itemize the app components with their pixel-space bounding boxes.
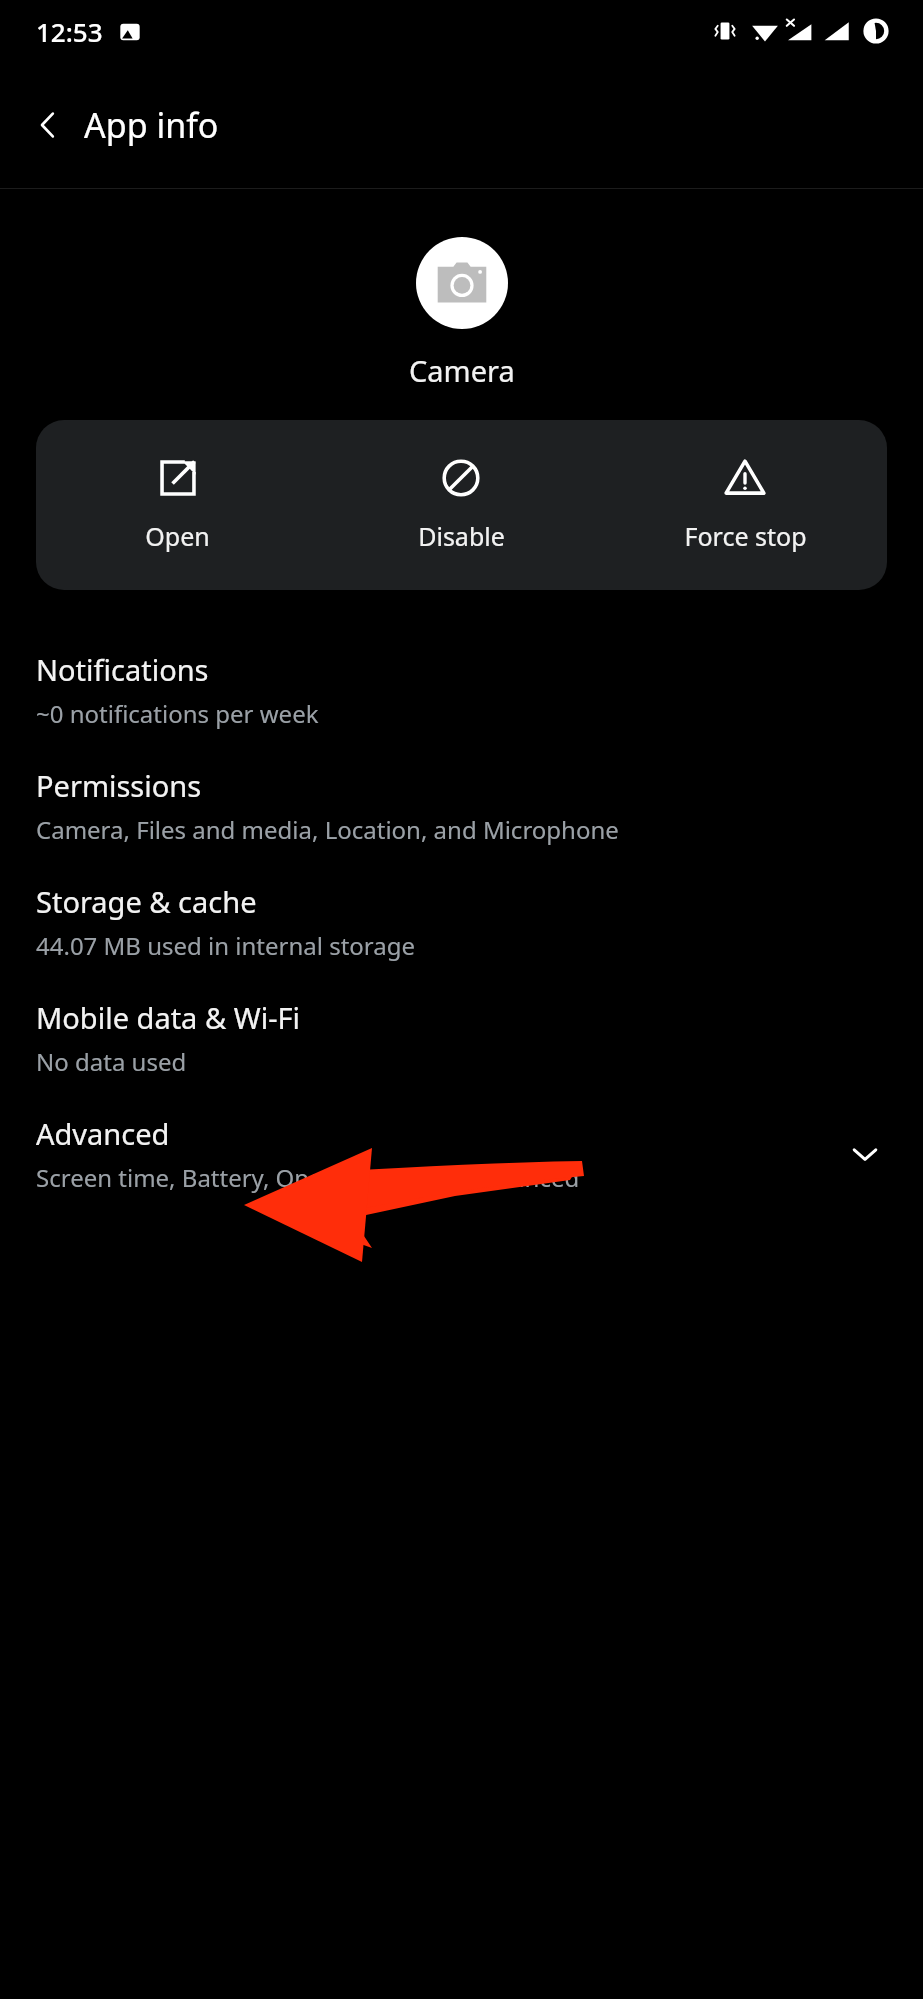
staticText: Force stop xyxy=(684,519,807,553)
staticText: Notifications xyxy=(36,650,209,689)
staticText: Open xyxy=(145,519,210,553)
button[interactable]: Disable xyxy=(319,420,603,590)
button[interactable]: Advanced xyxy=(0,1096,923,1212)
staticText: App info xyxy=(84,102,219,148)
button[interactable]: Permissions xyxy=(0,748,923,864)
staticText: Disable xyxy=(418,519,505,553)
staticText: Mobile data & Wi-Fi xyxy=(36,998,301,1037)
staticText: Screen time, Battery, Open by default, A… xyxy=(36,1161,580,1194)
button[interactable]: Notifications xyxy=(0,632,923,748)
staticText: Permissions xyxy=(36,766,202,805)
button[interactable]: Mobile data & Wi-Fi xyxy=(0,980,923,1096)
button[interactable]: Force stop xyxy=(603,420,887,590)
staticText: Storage & cache xyxy=(36,882,257,921)
staticText: Camera xyxy=(409,351,515,390)
staticText: 44.07 MB used in internal storage xyxy=(36,929,416,962)
button[interactable]: Open xyxy=(36,420,319,590)
button[interactable]: Back xyxy=(20,97,76,153)
staticText: Camera, Files and media, Location, and M… xyxy=(36,813,619,846)
staticText: Advanced xyxy=(36,1114,170,1153)
staticText: ~0 notifications per week xyxy=(36,697,319,730)
staticText: No data used xyxy=(36,1045,187,1078)
button[interactable]: Storage & cache xyxy=(0,864,923,980)
button[interactable]: Expand advanced xyxy=(837,1126,893,1182)
staticText: 12:53 xyxy=(36,14,103,49)
